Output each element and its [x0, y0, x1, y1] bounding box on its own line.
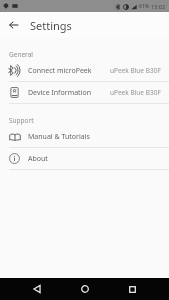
- staticText: Support: [9, 116, 34, 125]
- staticText: 15:02: [151, 3, 166, 10]
- button[interactable]: Recent apps: [121, 278, 143, 300]
- button[interactable]: Manual & Tutorials: [0, 126, 169, 147]
- button[interactable]: Back: [5, 16, 23, 34]
- staticText: General: [9, 50, 33, 59]
- staticText: Device Information: [28, 88, 92, 98]
- button[interactable]: Home: [74, 278, 96, 300]
- button[interactable]: Device Information: [0, 82, 169, 103]
- button[interactable]: Back: [26, 278, 48, 300]
- staticText: Manual & Tutorials: [28, 132, 90, 142]
- staticText: uPeek Blue B30F: [110, 66, 161, 75]
- button[interactable]: About: [0, 148, 169, 169]
- staticText: uPeek Blue B30F: [110, 88, 161, 97]
- staticText: Settings: [30, 18, 72, 33]
- button[interactable]: Connect microPeek: [0, 60, 169, 81]
- staticText: Connect microPeek: [28, 66, 92, 76]
- staticText: About: [28, 154, 48, 164]
- staticText: 61%: [139, 3, 149, 10]
